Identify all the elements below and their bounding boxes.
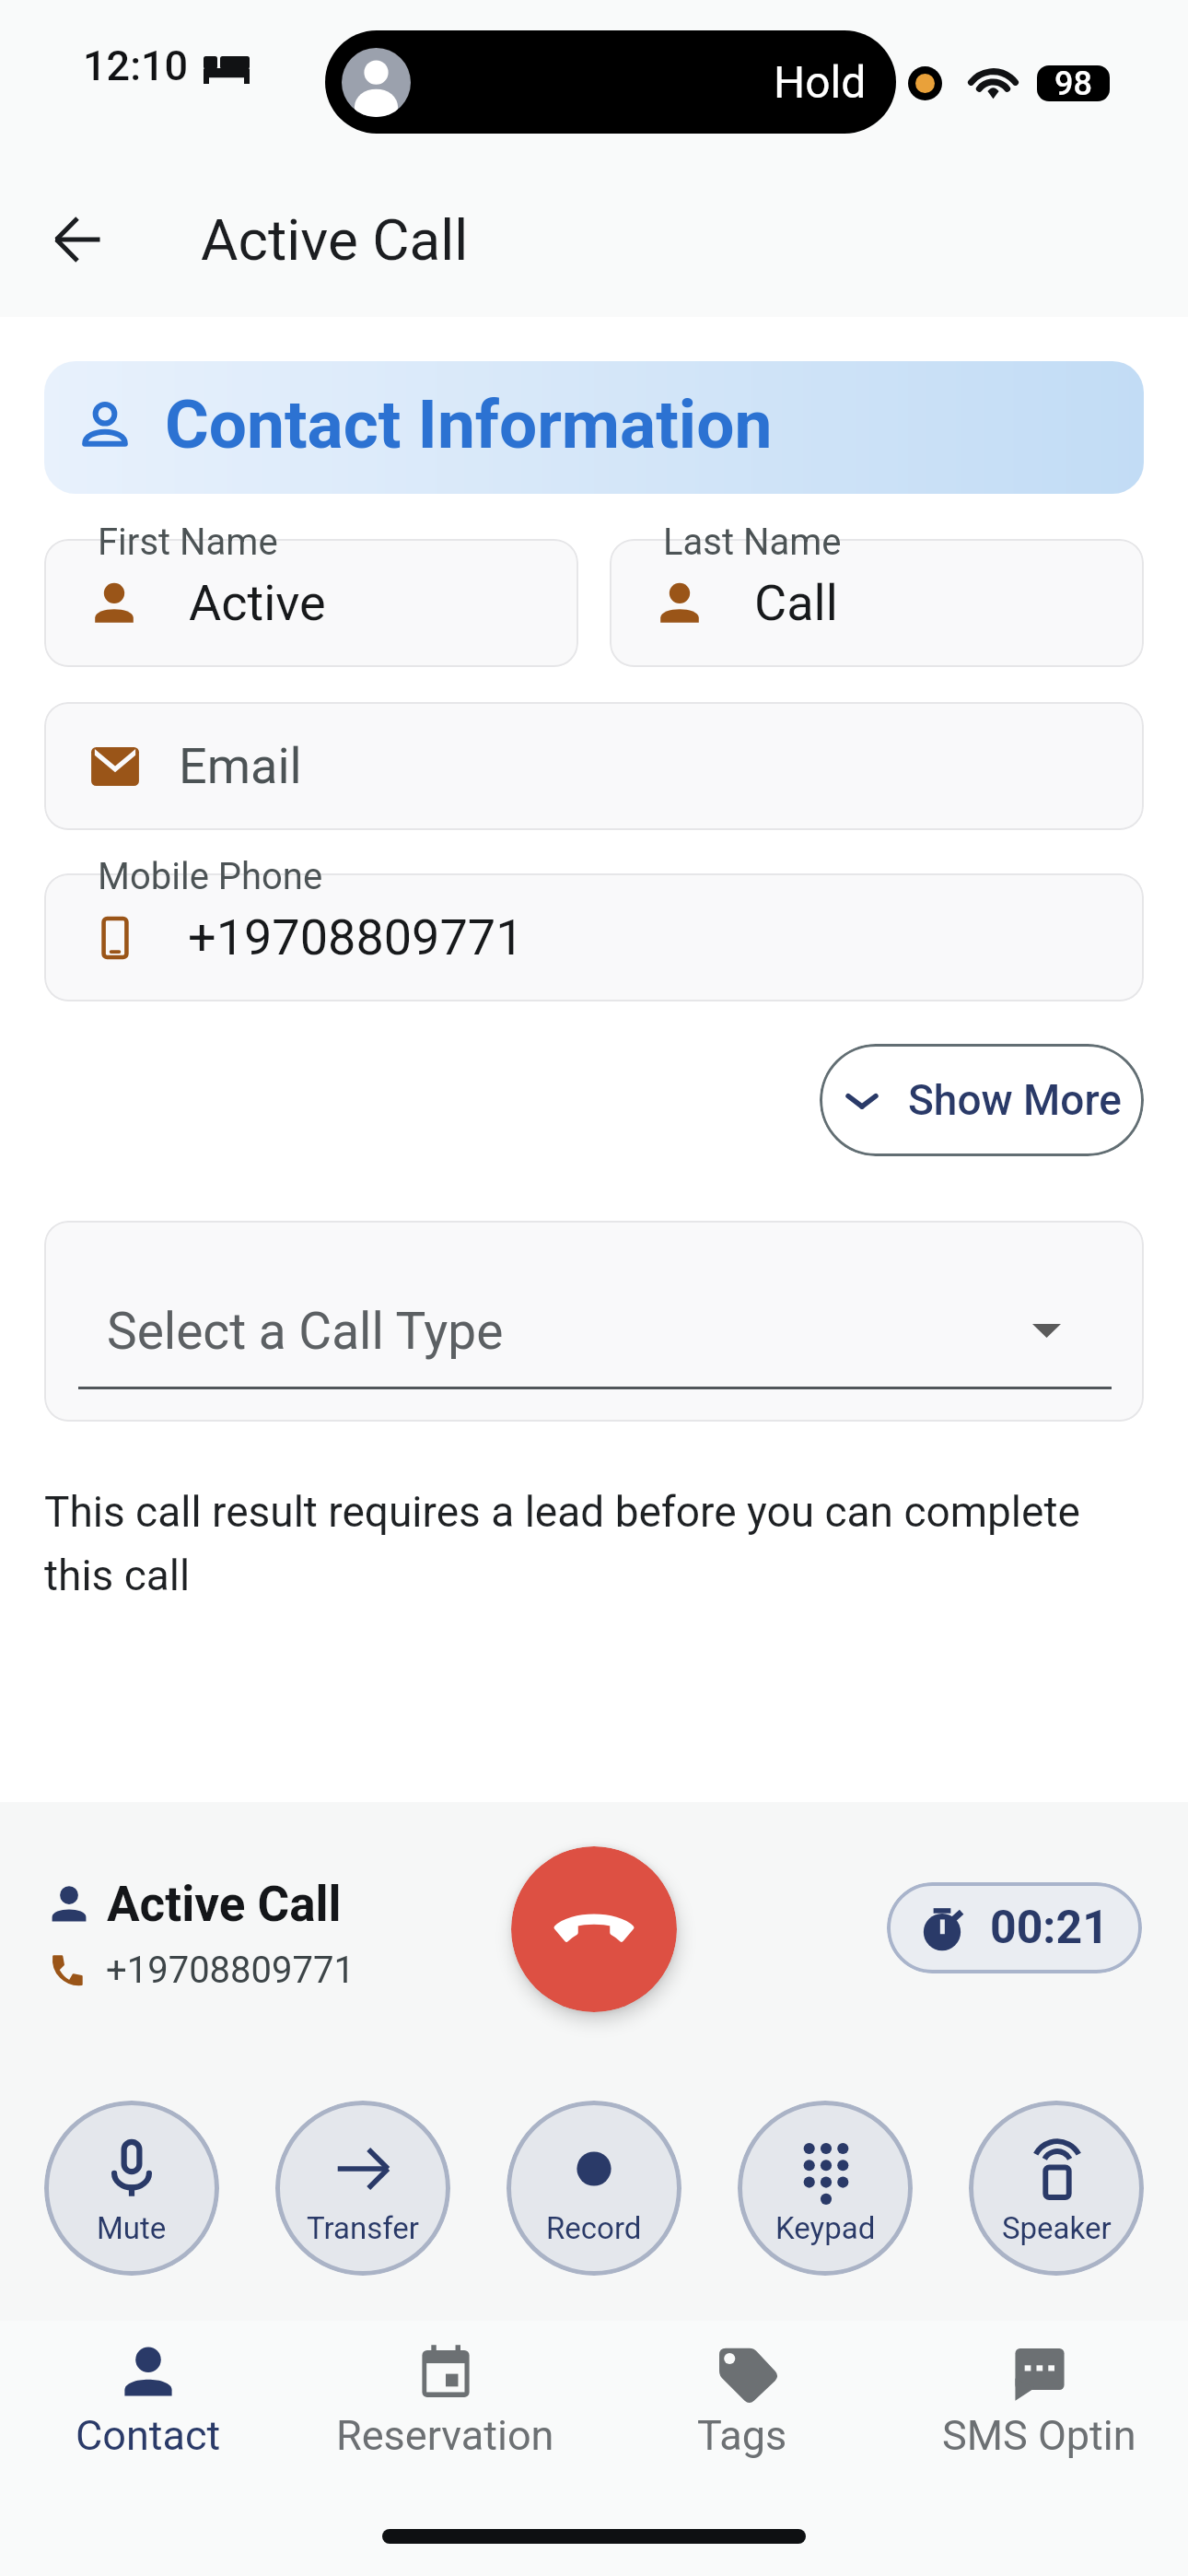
button[interactable]: Reservation <box>297 2321 593 2496</box>
staticText: SMS Optin <box>942 2411 1136 2460</box>
staticText: Call <box>754 574 838 632</box>
staticText: Active Call <box>107 1876 342 1933</box>
button[interactable]: Record <box>507 2101 681 2276</box>
staticText: Record <box>546 2210 642 2246</box>
staticText: Tags <box>697 2411 787 2460</box>
button[interactable]: End call <box>511 1846 677 2012</box>
staticText: Select a Call Type <box>107 1302 504 1361</box>
button[interactable]: 00:21 <box>887 1882 1142 1973</box>
button[interactable]: Back <box>39 201 116 278</box>
button[interactable]: Active <box>44 539 578 667</box>
staticText: Active Call <box>201 206 469 274</box>
staticText: +19708809771 <box>106 1949 355 1992</box>
staticText: Contact Information <box>165 385 773 464</box>
button[interactable]: SMS Optin <box>891 2321 1188 2496</box>
staticText: Mobile Phone <box>98 855 323 898</box>
staticText: Transfer <box>307 2210 419 2246</box>
button[interactable]: +19708809771 <box>44 873 1144 1001</box>
staticText: 98 <box>1054 65 1092 100</box>
staticText: This call result requires a lead before … <box>44 1487 1135 1600</box>
staticText: Last Name <box>663 521 842 564</box>
staticText: 00:21 <box>990 1901 1109 1955</box>
staticText: Speaker <box>1002 2210 1112 2246</box>
button[interactable]: Show More <box>820 1044 1144 1156</box>
button[interactable]: Contact Information <box>44 361 1144 494</box>
staticText: 12:10 <box>83 41 189 90</box>
button[interactable]: Email <box>44 702 1144 830</box>
staticText: Mute <box>97 2210 167 2246</box>
button[interactable]: Call <box>610 539 1144 667</box>
staticText: Contact <box>76 2411 221 2460</box>
staticText: First Name <box>98 521 278 564</box>
staticText: Email <box>179 737 302 795</box>
button[interactable]: Select a Call Type <box>44 1221 1144 1422</box>
button[interactable]: Mute <box>44 2101 219 2276</box>
button[interactable]: Speaker <box>969 2101 1144 2276</box>
button[interactable]: Transfer <box>275 2101 450 2276</box>
staticText: Hold <box>774 56 867 108</box>
staticText: Keypad <box>775 2210 876 2246</box>
staticText: Show More <box>908 1075 1122 1125</box>
button[interactable]: Contact <box>0 2321 297 2496</box>
button[interactable]: Tags <box>593 2321 891 2496</box>
staticText: +19708809771 <box>188 908 524 966</box>
staticText: Reservation <box>336 2411 554 2460</box>
button[interactable]: Keypad <box>738 2101 913 2276</box>
staticText: Active <box>189 574 326 632</box>
